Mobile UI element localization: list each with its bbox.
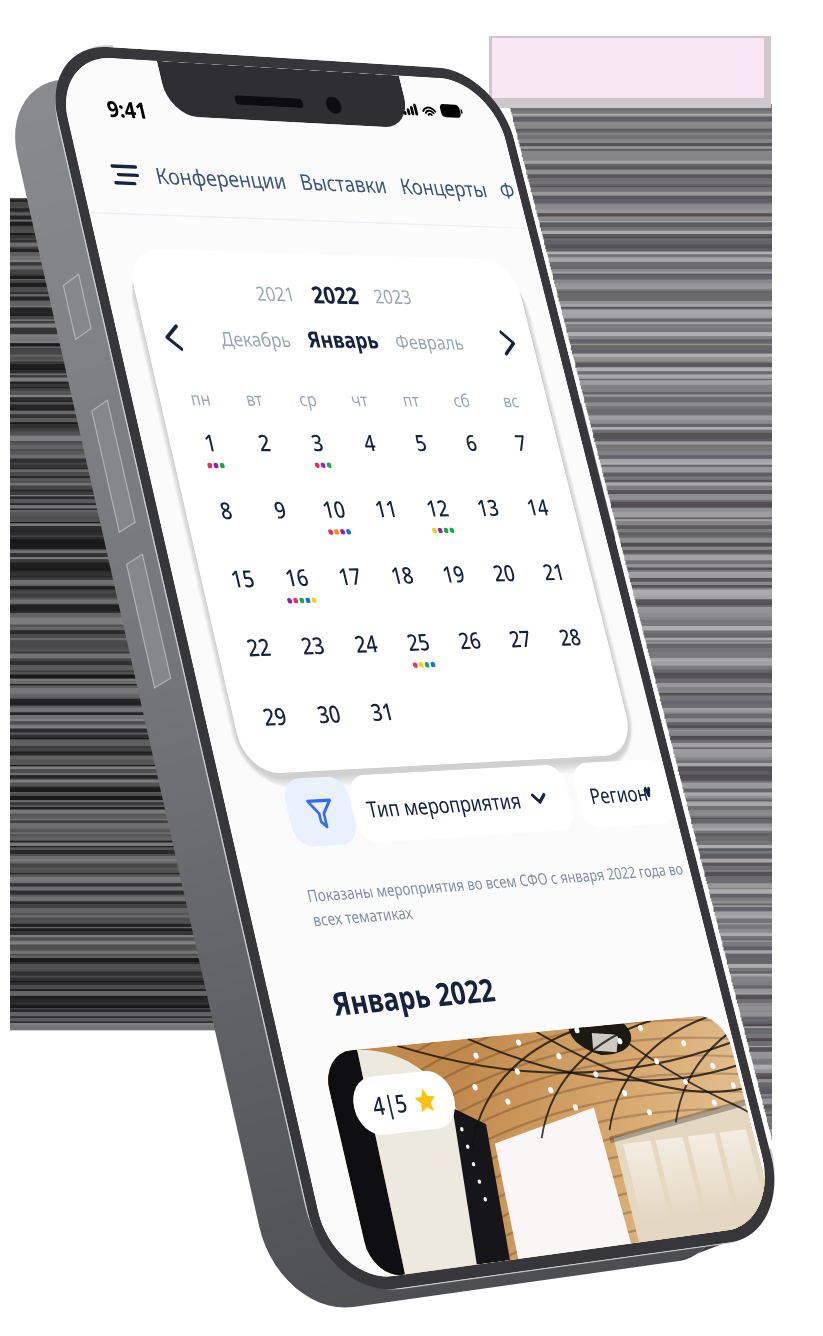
button[interactable]: Тип мероприятия [346, 764, 577, 844]
button[interactable]: 1 [180, 427, 250, 495]
staticText: сб [450, 388, 473, 412]
button[interactable]: 27 [491, 622, 557, 690]
staticText: 27 [506, 623, 535, 654]
button[interactable]: 13 [459, 492, 525, 558]
button[interactable]: 31 [352, 695, 421, 765]
staticText: 20 [490, 557, 519, 588]
button[interactable]: 28 [541, 621, 607, 688]
staticText: 5 [412, 427, 431, 458]
staticText: 18 [387, 559, 417, 591]
button[interactable]: Filter [280, 776, 360, 848]
staticText: 2023 [371, 283, 415, 310]
button[interactable]: Выставки [286, 153, 400, 214]
button[interactable]: 17 [319, 560, 388, 629]
staticText: 10 [319, 493, 349, 525]
staticText: 1 [201, 427, 220, 458]
staticText: 3 [308, 427, 327, 458]
button[interactable]: 21 [525, 556, 590, 622]
button[interactable]: 16 [266, 561, 335, 630]
button[interactable]: 22 [227, 630, 298, 701]
staticText: 6 [462, 427, 481, 458]
staticText: 16 [282, 561, 312, 594]
staticText: Тип мероприятия [364, 785, 525, 823]
staticText: Форумы [496, 175, 516, 205]
staticText: 9:41 [104, 93, 150, 126]
staticText: 24 [351, 627, 381, 660]
button[interactable]: 2021 [243, 279, 308, 307]
button[interactable]: 6 [443, 427, 509, 492]
staticText: Показаны мероприятия во всем СФО с январ… [305, 857, 696, 931]
button[interactable]: 20 [475, 557, 541, 624]
button[interactable]: Previous month [147, 314, 198, 360]
button[interactable]: 8 [195, 494, 266, 563]
staticText: 2021 [253, 280, 298, 307]
button[interactable]: 2 [234, 427, 303, 494]
staticText: 14 [523, 492, 552, 522]
button[interactable]: 4 [340, 427, 408, 493]
staticText: 4 [360, 427, 379, 458]
button[interactable]: 11 [356, 493, 424, 560]
staticText: 7 [512, 428, 531, 458]
button[interactable]: 15 [211, 562, 282, 632]
button[interactable]: Menu [100, 151, 150, 197]
staticText: 25 [404, 626, 434, 658]
staticText: 4|5 [369, 1086, 411, 1123]
button[interactable]: Январь [300, 324, 386, 355]
staticText: чт [348, 387, 371, 412]
staticText: Конференции [152, 160, 289, 196]
button[interactable]: 2023 [361, 282, 424, 310]
button[interactable]: 25 [388, 625, 456, 695]
button[interactable]: 23 [282, 629, 352, 699]
button[interactable]: 5 [392, 427, 459, 493]
staticText: 22 [243, 631, 274, 664]
staticText: вт [243, 386, 266, 411]
staticText: 13 [474, 492, 503, 523]
button[interactable]: Февраль [385, 328, 474, 355]
staticText: 19 [439, 558, 468, 590]
button[interactable]: 24 [335, 627, 404, 697]
button[interactable]: 30 [298, 697, 368, 768]
staticText: 11 [371, 493, 401, 524]
staticText: 8 [217, 494, 236, 526]
staticText: вс [500, 388, 521, 413]
button[interactable]: Концерты [387, 157, 500, 217]
button[interactable]: 18 [372, 559, 440, 627]
button[interactable]: 9 [250, 494, 319, 562]
staticText: пн [187, 385, 213, 411]
staticText: 21 [539, 556, 568, 587]
staticText: 12 [423, 493, 452, 524]
button[interactable]: Форумы [486, 162, 525, 218]
button[interactable]: 29 [243, 699, 314, 771]
button[interactable]: 14 [509, 492, 574, 557]
staticText: 28 [556, 621, 585, 653]
button[interactable]: 3 [288, 427, 356, 494]
button[interactable]: 2022 [301, 278, 368, 311]
staticText: Февраль [392, 328, 467, 355]
staticText: ср [296, 386, 320, 412]
staticText: 26 [455, 624, 485, 656]
button[interactable]: Декабрь [210, 325, 301, 353]
button[interactable]: 12 [408, 492, 475, 559]
button[interactable]: Регион [569, 758, 678, 829]
button[interactable]: 26 [440, 624, 507, 692]
button[interactable]: 10 [303, 493, 372, 561]
staticText: 2 [255, 427, 274, 458]
staticText: 29 [259, 700, 291, 733]
staticText: Концерты [397, 171, 490, 204]
staticText: 30 [314, 697, 345, 731]
staticText: 31 [367, 695, 398, 728]
staticText: Выставки [296, 167, 390, 200]
staticText: Январь 2022 [327, 968, 500, 1027]
button[interactable]: 4|5 [321, 1014, 776, 1279]
staticText: Январь [304, 324, 383, 355]
staticText: 9 [271, 494, 290, 526]
button[interactable]: Next month [485, 320, 532, 364]
staticText: 17 [335, 560, 365, 592]
staticText: Регион [586, 778, 651, 810]
button[interactable]: 19 [424, 558, 491, 625]
staticText: 23 [298, 629, 328, 662]
staticText: Декабрь [217, 325, 294, 353]
button[interactable]: Конференции [142, 146, 300, 210]
button[interactable]: 7 [493, 428, 558, 492]
staticText: 2022 [308, 278, 361, 311]
